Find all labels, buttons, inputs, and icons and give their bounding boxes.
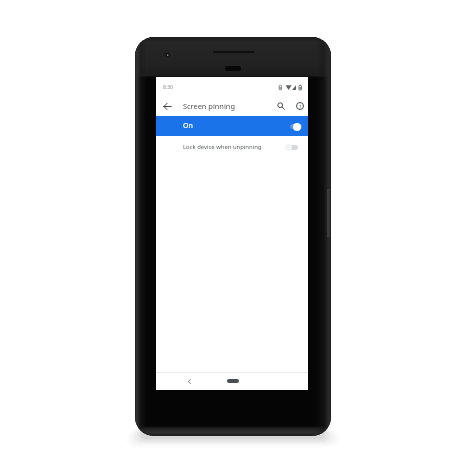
button[interactable]: Home (227, 379, 239, 383)
button[interactable]: Navigate up (159, 98, 175, 114)
staticText: ? (299, 103, 302, 110)
button[interactable]: Back (183, 375, 195, 387)
staticText: On (183, 121, 193, 131)
staticText: Screen pinning (183, 101, 235, 111)
button[interactable]: Help (292, 98, 308, 114)
button[interactable]: Search (273, 98, 289, 114)
staticText: Lock device when unpinning (183, 143, 262, 151)
button[interactable]: On (156, 116, 308, 136)
staticText: 8:30 (163, 84, 173, 91)
button[interactable]: Lock device when unpinning (156, 136, 308, 158)
